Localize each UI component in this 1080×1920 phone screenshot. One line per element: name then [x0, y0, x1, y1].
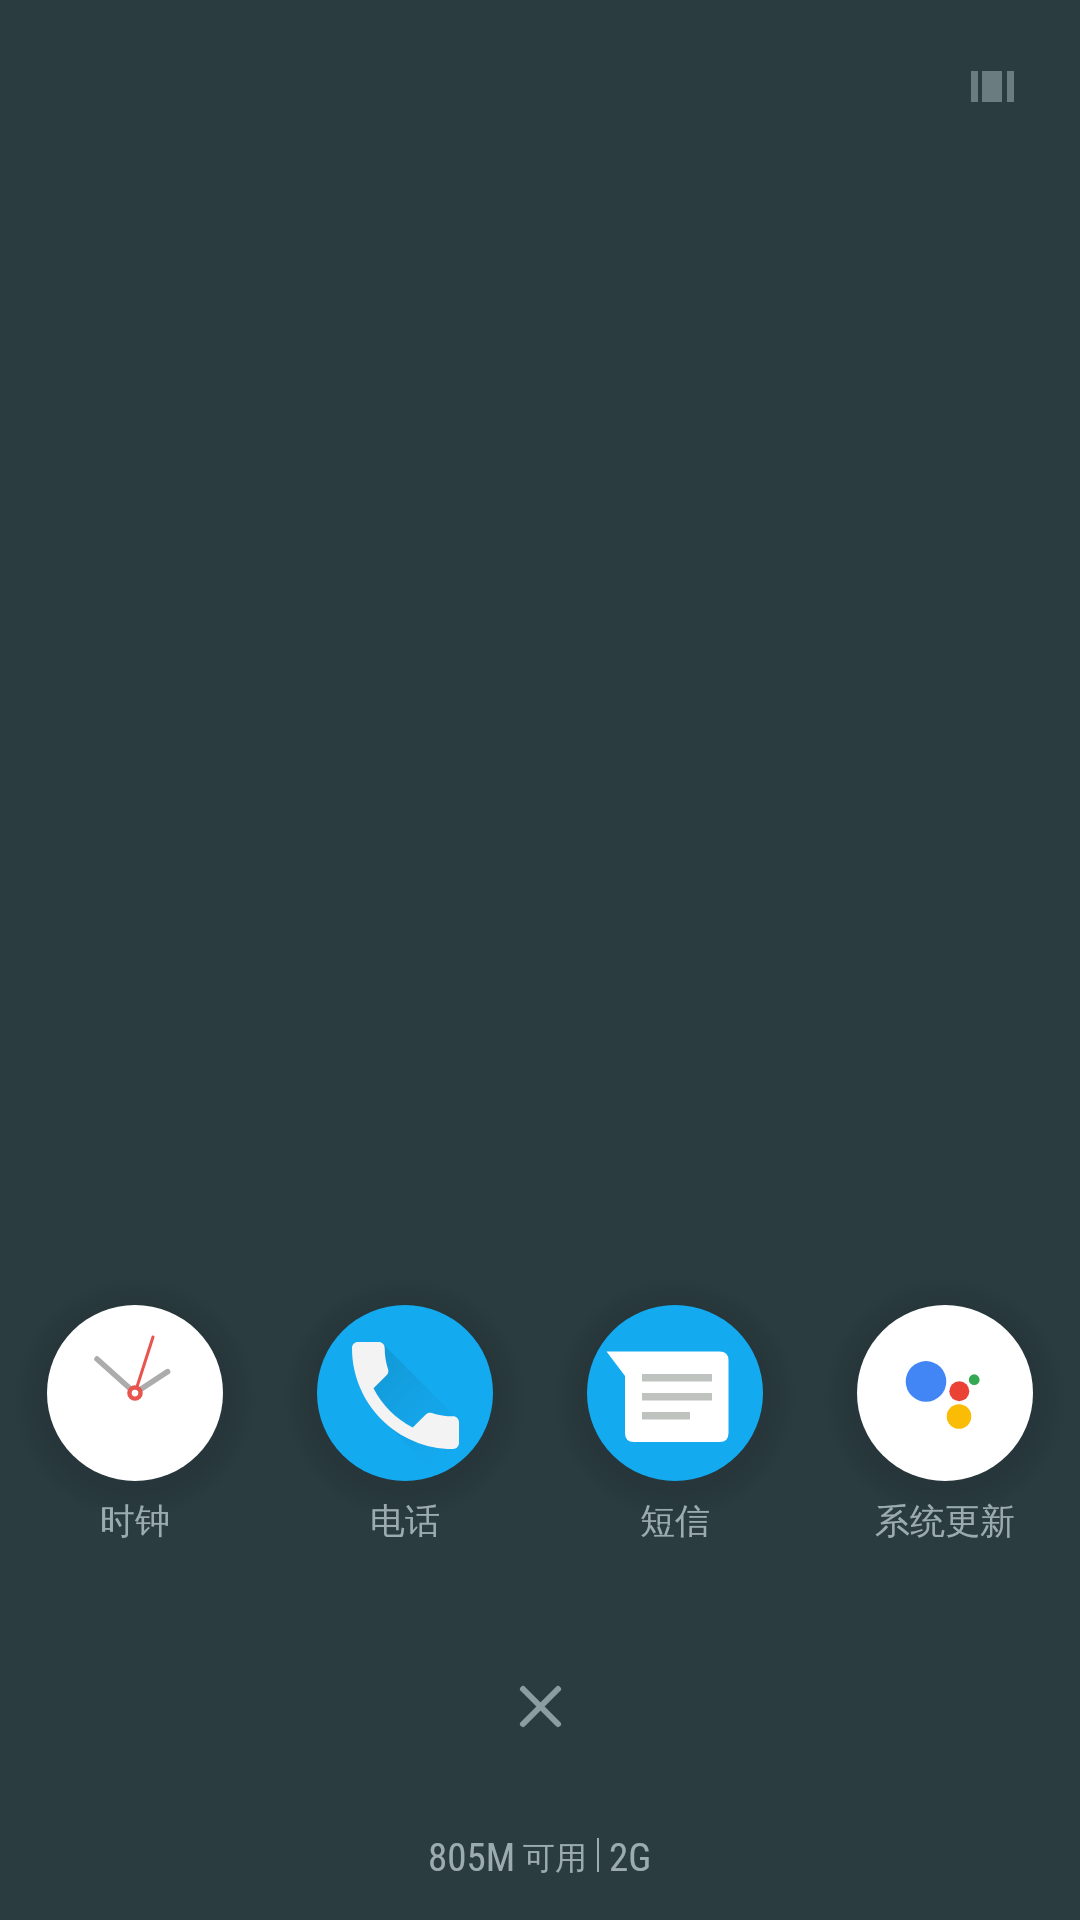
staticText: 短信	[640, 1499, 710, 1543]
staticText: 可用	[523, 1838, 587, 1878]
button[interactable]: Close all	[470, 1636, 610, 1776]
button[interactable]: 短信	[540, 1289, 810, 1543]
staticText: 时钟	[100, 1499, 170, 1543]
staticText: 电话	[370, 1499, 440, 1543]
button[interactable]: 电话	[270, 1289, 540, 1543]
button[interactable]: 时钟	[0, 1289, 270, 1543]
staticText: 805M	[428, 1835, 516, 1881]
button[interactable]: 系统更新	[810, 1289, 1080, 1543]
staticText: 系统更新	[875, 1499, 1015, 1543]
button[interactable]: Split screen	[951, 45, 1033, 127]
staticText: 2G	[609, 1835, 652, 1881]
